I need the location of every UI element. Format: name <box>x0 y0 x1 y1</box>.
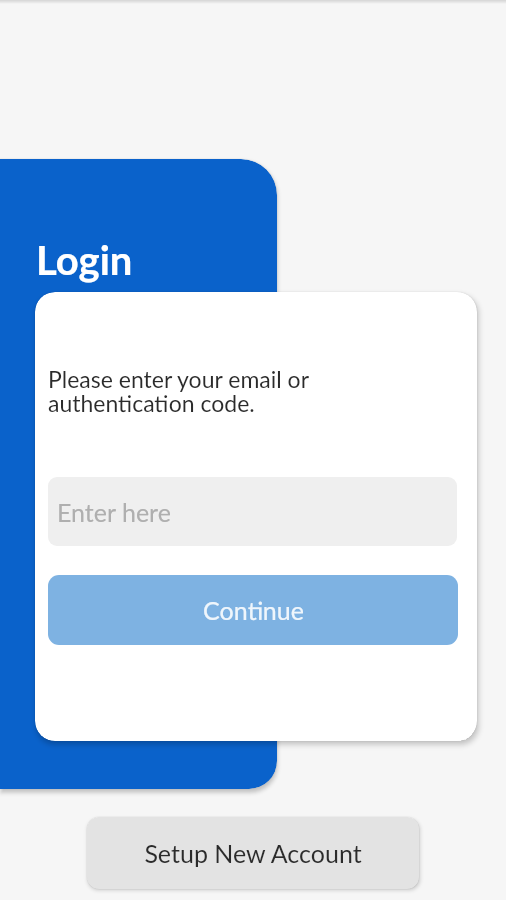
staticText: Enter here <box>57 497 171 527</box>
button[interactable]: Continue <box>48 575 458 645</box>
staticText: Please enter your email or authenticatio… <box>48 365 310 417</box>
button[interactable]: Enter here <box>48 477 457 546</box>
staticText: Setup New Account <box>144 838 362 868</box>
staticText: Login <box>36 236 133 284</box>
staticText: Continue <box>203 595 304 625</box>
button[interactable]: Setup New Account <box>87 817 419 889</box>
